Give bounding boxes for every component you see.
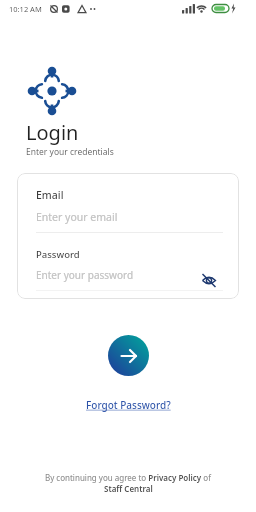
staticText: Staff Central — [104, 483, 153, 494]
staticText: By continuing you agree to Privacy Polic… — [45, 472, 211, 483]
staticText: 10:12 AM — [9, 4, 42, 14]
staticText: Enter your credentials — [26, 146, 114, 158]
button[interactable]: Enter your email — [36, 210, 223, 224]
button[interactable] — [108, 335, 149, 376]
staticText: Login — [26, 119, 79, 146]
button[interactable]: Enter your password — [36, 268, 223, 288]
staticText: Email — [36, 188, 64, 202]
button[interactable]: Forgot Password? — [86, 398, 171, 412]
staticText: Enter your password — [36, 268, 134, 282]
staticText: Password — [36, 248, 80, 261]
button[interactable] — [201, 272, 217, 288]
staticText: Enter your email — [36, 210, 118, 224]
